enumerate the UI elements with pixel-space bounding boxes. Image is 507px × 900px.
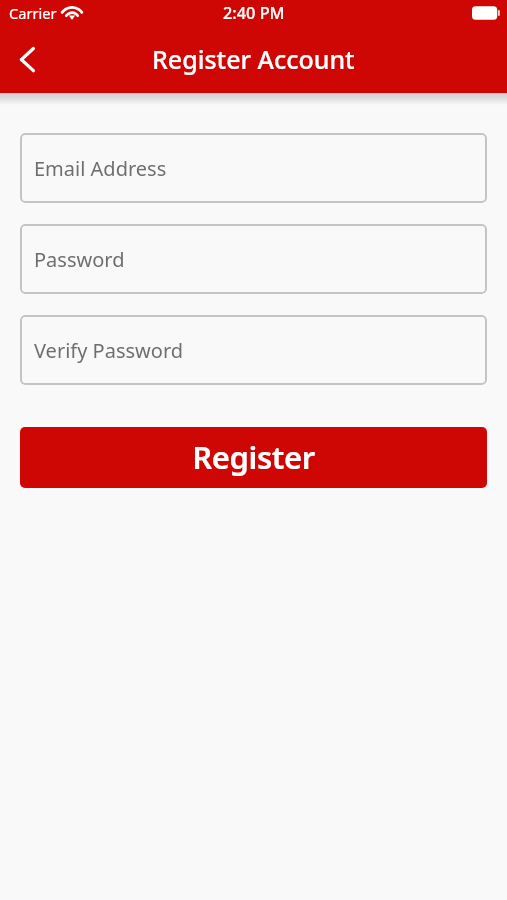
button[interactable]: Register xyxy=(20,427,487,488)
button[interactable]: Email Address xyxy=(20,133,487,203)
button[interactable]: Back xyxy=(0,36,48,84)
staticText: Register xyxy=(192,436,315,478)
staticText: Carrier xyxy=(9,3,57,23)
staticText: Email Address xyxy=(34,155,167,182)
staticText: Register Account xyxy=(152,42,355,76)
button[interactable]: Verify Password xyxy=(20,315,487,385)
staticText: Verify Password xyxy=(34,337,184,364)
button[interactable]: Password xyxy=(20,224,487,294)
staticText: Password xyxy=(34,246,125,273)
staticText: 2:40 PM xyxy=(223,2,285,24)
